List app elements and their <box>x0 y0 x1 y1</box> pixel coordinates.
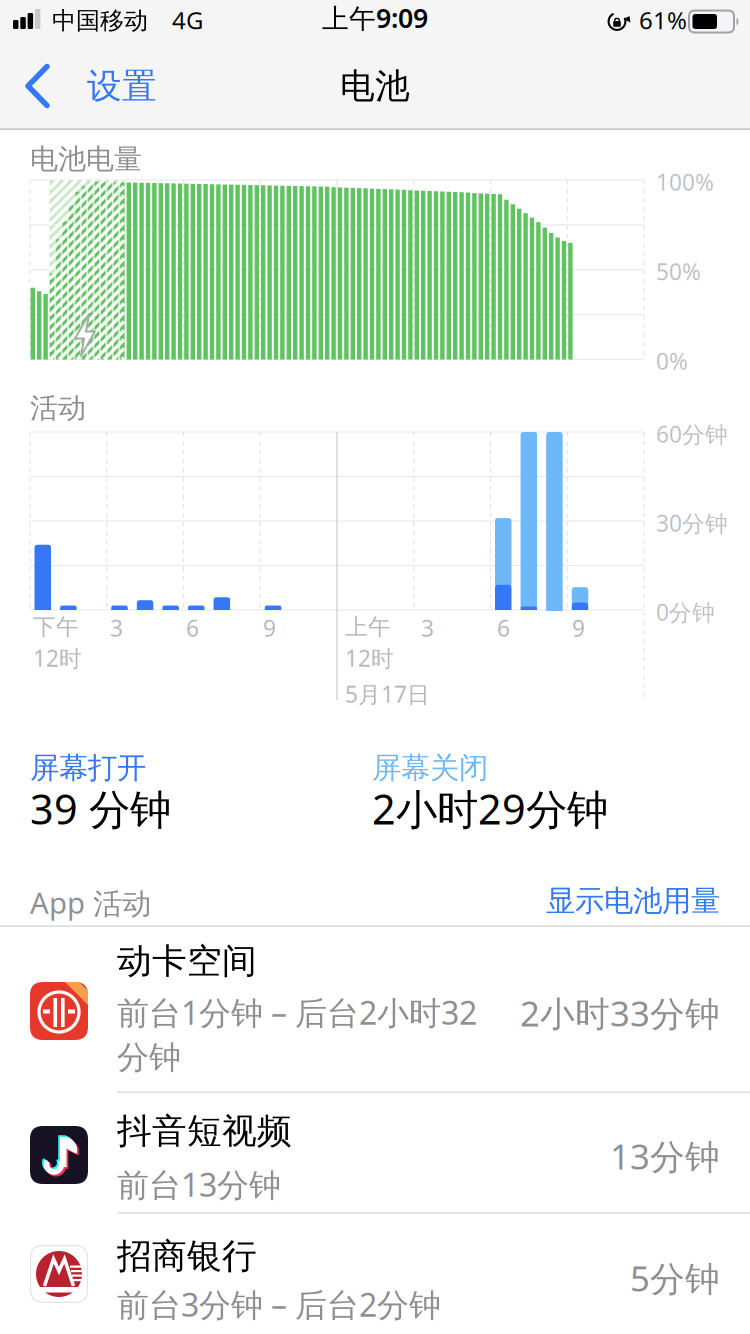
staticText: 4G <box>172 4 203 36</box>
staticText: 6 <box>186 613 199 643</box>
button[interactable]: 招商银行 <box>0 0 750 1334</box>
staticText: App 活动 <box>30 883 151 922</box>
button[interactable]: 返回设置 <box>0 0 70 43</box>
staticText: 前台1分钟 – 后台2小时32 <box>117 991 477 1033</box>
button[interactable]: 抖音短视频 <box>0 0 750 1334</box>
staticText: 招商银行 <box>117 1235 257 1278</box>
staticText: 电池电量 <box>30 142 142 176</box>
staticText: 100% <box>656 167 714 197</box>
staticText: 抖音短视频 <box>117 1110 292 1153</box>
button[interactable]: 动卡空间 <box>0 0 750 1334</box>
staticText: 13分钟 <box>610 1133 720 1179</box>
staticText: 3 <box>110 613 123 643</box>
staticText: 前台3分钟 – 后台2分钟 <box>117 1283 441 1325</box>
staticText: 活动 <box>30 391 86 425</box>
staticText: 6 <box>497 613 510 643</box>
staticText: 12时 <box>33 643 82 673</box>
staticText: 5分钟 <box>630 1255 720 1301</box>
staticText: 显示电池用量 <box>546 883 720 919</box>
staticText: 9 <box>572 613 585 643</box>
staticText: 61% <box>639 4 687 36</box>
staticText: 3 <box>421 613 434 643</box>
staticText: 50% <box>656 256 701 287</box>
staticText: 2小时33分钟 <box>520 990 720 1036</box>
staticText: 动卡空间 <box>117 940 257 983</box>
staticText: 下午 <box>33 613 79 641</box>
staticText: 60分钟 <box>656 419 728 449</box>
staticText: 中国移动 <box>52 6 148 35</box>
staticText: 电池 <box>340 65 410 108</box>
staticText: 前台13分钟 <box>117 1163 281 1205</box>
staticText: 上午9:09 <box>322 0 428 35</box>
staticText: 9 <box>263 613 276 643</box>
staticText: 屏幕打开 <box>30 750 146 786</box>
staticText: 12时 <box>345 643 394 673</box>
staticText: 5月17日 <box>345 679 430 709</box>
staticText: 30分钟 <box>656 508 728 538</box>
staticText: 2小时29分钟 <box>372 781 608 836</box>
staticText: 0% <box>656 346 688 376</box>
staticText: 上午 <box>345 613 391 641</box>
staticText: 0分钟 <box>656 597 715 627</box>
button[interactable]: 显示电池用量 <box>0 0 750 36</box>
staticText: 设置 <box>87 65 157 108</box>
staticText: 屏幕关闭 <box>372 750 488 786</box>
staticText: 分钟 <box>117 1038 181 1077</box>
staticText: 39 分钟 <box>30 781 171 836</box>
